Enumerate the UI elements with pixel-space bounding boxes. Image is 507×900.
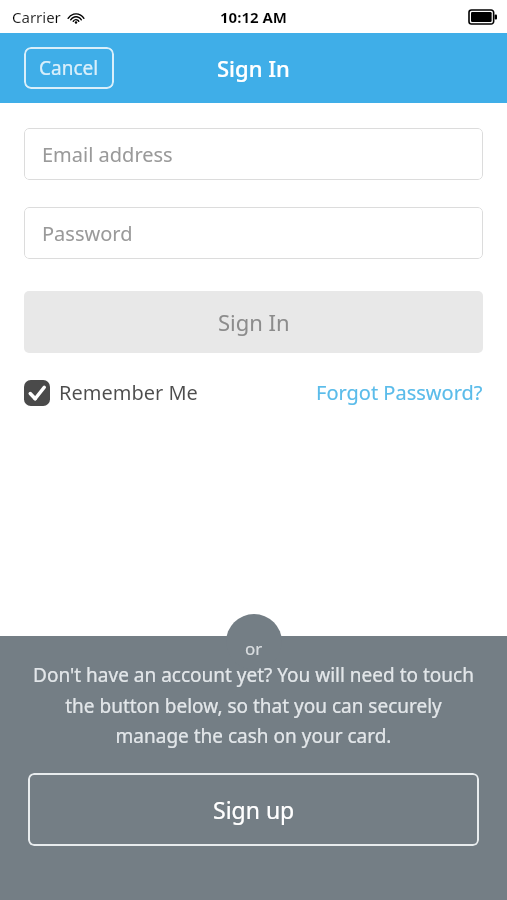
button[interactable]: Sign up [28, 773, 479, 846]
staticText: Cancel [39, 55, 99, 81]
button[interactable]: Sign In [24, 291, 483, 353]
staticText: Password [42, 220, 133, 247]
staticText: Don't have an account yet? You will need… [28, 662, 479, 748]
staticText: Carrier [12, 7, 61, 27]
staticText: or [245, 637, 263, 660]
staticText: Forgot Password? [316, 379, 483, 406]
button[interactable]: Cancel [24, 47, 114, 89]
staticText: Sign up [213, 794, 295, 825]
staticText: Remember Me [59, 379, 198, 406]
button[interactable]: Forgot Password? [316, 379, 483, 406]
staticText: Sign In [218, 307, 290, 337]
button[interactable]: Remember Me [24, 379, 198, 406]
button[interactable]: Email address [24, 128, 483, 180]
button[interactable]: Password [24, 207, 483, 259]
staticText: Email address [42, 141, 173, 168]
staticText: Sign In [217, 53, 290, 83]
staticText: 10:12 AM [220, 7, 287, 27]
